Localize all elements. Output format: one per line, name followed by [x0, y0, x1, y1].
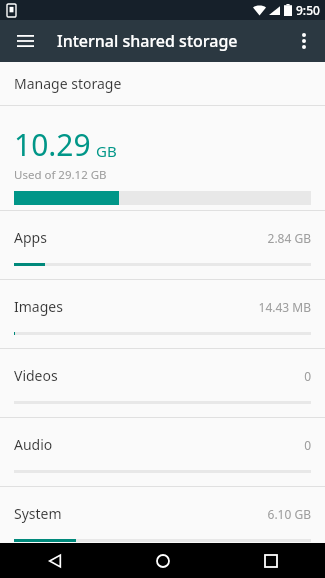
- staticText: 0: [304, 437, 311, 453]
- staticText: 6.10 GB: [267, 506, 311, 522]
- staticText: Audio: [14, 435, 53, 454]
- button[interactable]: Navigation menu: [8, 24, 42, 58]
- button[interactable]: More options: [287, 24, 321, 58]
- button[interactable]: Back: [0, 543, 109, 578]
- staticText: 9:50: [296, 2, 320, 18]
- staticText: Internal shared storage: [57, 30, 238, 52]
- staticText: System: [14, 504, 62, 523]
- button[interactable]: Recent apps: [217, 543, 325, 578]
- button[interactable]: Manage storage: [0, 62, 325, 105]
- button[interactable]: Home: [109, 543, 217, 578]
- staticText: 10.29: [14, 124, 91, 165]
- button[interactable]: Apps: [0, 211, 325, 279]
- staticText: 2.84 GB: [267, 230, 311, 246]
- staticText: Images: [14, 297, 63, 316]
- staticText: 0: [304, 368, 311, 384]
- button[interactable]: 10.29: [0, 106, 325, 210]
- button[interactable]: Audio: [0, 418, 325, 486]
- staticText: 14.43 MB: [258, 299, 311, 315]
- staticText: Videos: [14, 366, 58, 385]
- staticText: Manage storage: [14, 74, 122, 93]
- staticText: GB: [96, 141, 117, 161]
- staticText: Used of 29.12 GB: [14, 167, 107, 183]
- button[interactable]: System: [0, 487, 325, 543]
- button[interactable]: Videos: [0, 349, 325, 417]
- staticText: Apps: [14, 228, 47, 247]
- button[interactable]: Images: [0, 280, 325, 348]
